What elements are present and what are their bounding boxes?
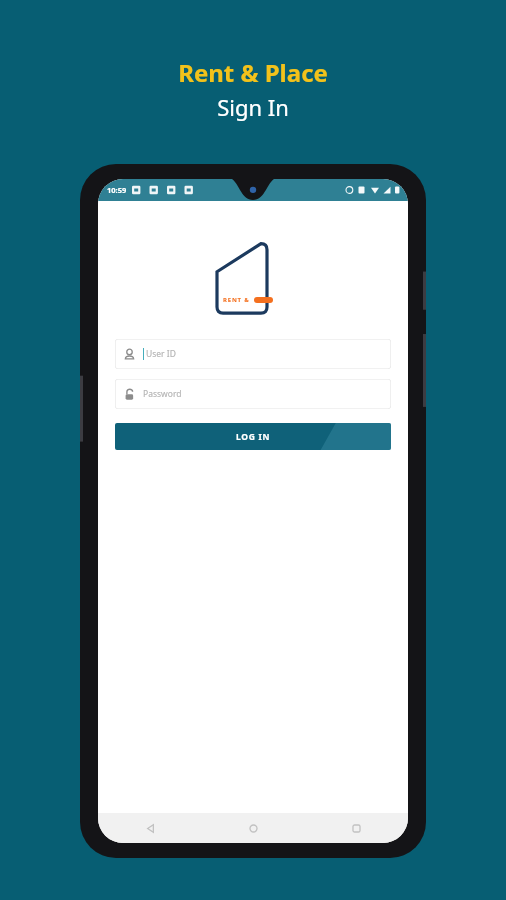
staticText: RENT & — [223, 296, 250, 304]
button[interactable]: User ID — [115, 339, 391, 369]
staticText: Rent & Place — [178, 56, 328, 89]
staticText: User ID — [146, 348, 176, 360]
staticText: Password — [143, 388, 182, 400]
staticText: Sign In — [217, 92, 289, 122]
button[interactable]: Password — [115, 379, 391, 409]
staticText: 10:59 — [107, 185, 127, 195]
button[interactable]: LOG IN — [115, 423, 391, 450]
button[interactable]: Back — [98, 813, 202, 843]
button[interactable]: Home — [202, 813, 305, 843]
button[interactable]: Recent apps — [305, 813, 408, 843]
staticText: LOG IN — [236, 431, 271, 443]
